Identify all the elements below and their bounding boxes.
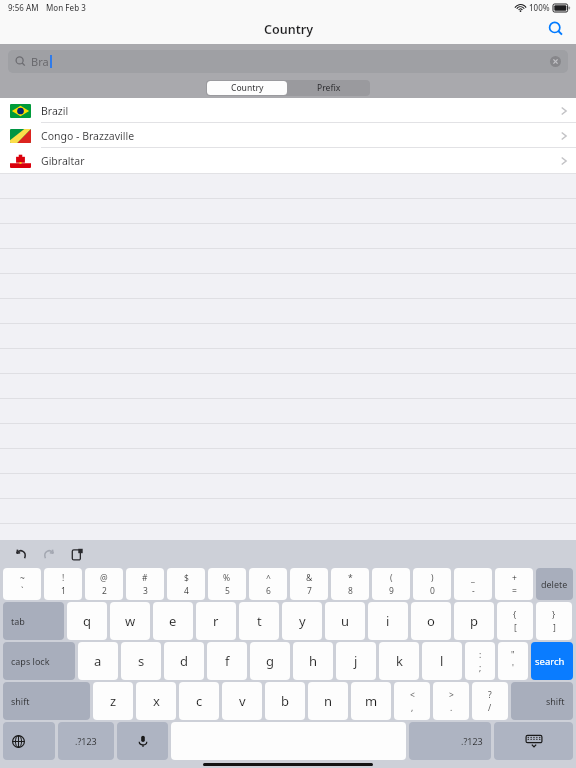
button[interactable]: g [250,642,290,680]
button[interactable]: _ [454,568,492,600]
button[interactable]: * [331,568,369,600]
button[interactable]: s [121,642,161,680]
staticText: " [511,649,515,661]
staticText: k [396,652,403,670]
button[interactable]: Brazil [0,98,576,123]
staticText: ` [21,585,24,597]
button[interactable]: .?123 [409,722,491,760]
staticText: Brazil [41,104,69,118]
staticText: Mon Feb 3 [46,2,86,13]
staticText: y [299,612,306,630]
button[interactable]: e [153,602,193,640]
staticText: ? [488,689,492,701]
staticText: q [83,612,91,630]
staticText: % [223,572,231,584]
button[interactable]: caps lock [3,642,75,680]
button[interactable]: ( [372,568,410,600]
button[interactable]: p [454,602,494,640]
button[interactable]: o [411,602,451,640]
staticText: i [386,612,390,630]
button[interactable]: d [164,642,204,680]
button[interactable]: k [379,642,419,680]
staticText: delete [541,578,568,590]
button[interactable]: x [136,682,176,720]
button[interactable]: + [495,568,533,600]
button[interactable]: Paste [66,543,88,565]
staticText: s [138,652,145,670]
button[interactable]: $ [167,568,205,600]
button[interactable]: : [465,642,495,680]
button[interactable]: j [336,642,376,680]
button[interactable]: Bra [8,50,568,73]
button[interactable]: Hide keyboard [494,722,573,760]
button[interactable]: Clear text [549,55,562,68]
staticText: z [110,692,117,710]
button[interactable]: tab [3,602,64,640]
staticText: b [281,692,289,710]
button[interactable]: Undo [10,543,32,565]
button[interactable]: Congo - Brazzaville [0,123,576,148]
button[interactable]: # [126,568,164,600]
button[interactable]: i [368,602,408,640]
button[interactable]: n [308,682,348,720]
button[interactable]: c [179,682,219,720]
staticText: c [196,692,203,710]
button[interactable]: ^ [249,568,287,600]
button[interactable]: r [196,602,236,640]
button[interactable]: w [110,602,150,640]
staticText: ; [479,662,482,674]
button[interactable]: q [67,602,107,640]
button[interactable]: Redo [38,543,60,565]
button[interactable]: { [497,602,533,640]
button[interactable]: z [93,682,133,720]
staticText: 5 [225,585,230,597]
staticText: 1 [61,585,66,597]
button[interactable]: l [422,642,462,680]
button[interactable]: t [239,602,279,640]
button[interactable]: ? [472,682,508,720]
button[interactable]: v [222,682,262,720]
button[interactable]: @ [85,568,123,600]
button[interactable]: ) [413,568,451,600]
staticText: t [257,612,262,630]
button[interactable]: Search [543,16,569,42]
button[interactable]: h [293,642,333,680]
staticText: Gibraltar [41,154,85,168]
staticText: ^ [266,572,271,584]
staticText: Country [264,21,313,38]
button[interactable]: search [531,642,573,680]
button[interactable]: shift [511,682,573,720]
button[interactable]: delete [536,568,573,600]
staticText: m [365,692,378,710]
button[interactable]: y [282,602,322,640]
staticText: Bra [31,54,49,69]
staticText: 0 [430,585,435,597]
button[interactable]: " [498,642,528,680]
button[interactable]: ~ [3,568,41,600]
button[interactable]: > [433,682,469,720]
button[interactable]: Dictation [117,722,168,760]
button[interactable]: a [78,642,118,680]
button[interactable]: Country [207,81,287,95]
button[interactable]: % [208,568,246,600]
button[interactable]: b [265,682,305,720]
staticText: / [488,702,492,714]
button[interactable]: ! [44,568,82,600]
button[interactable]: u [325,602,365,640]
button[interactable]: Prefix [288,80,370,96]
button[interactable]: < [394,682,430,720]
button[interactable]: m [351,682,391,720]
staticText: 2 [102,585,107,597]
button[interactable]: shift [3,682,90,720]
button[interactable]: .?123 [58,722,114,760]
staticText: p [470,612,478,630]
staticText: 9 [389,585,394,597]
button[interactable]: Gibraltar [0,148,576,173]
button[interactable]: & [290,568,328,600]
button[interactable]: } [536,602,572,640]
staticText: { [513,609,517,621]
staticText: > [449,689,454,701]
button[interactable]: Change keyboard language [3,722,55,760]
button[interactable]: f [207,642,247,680]
